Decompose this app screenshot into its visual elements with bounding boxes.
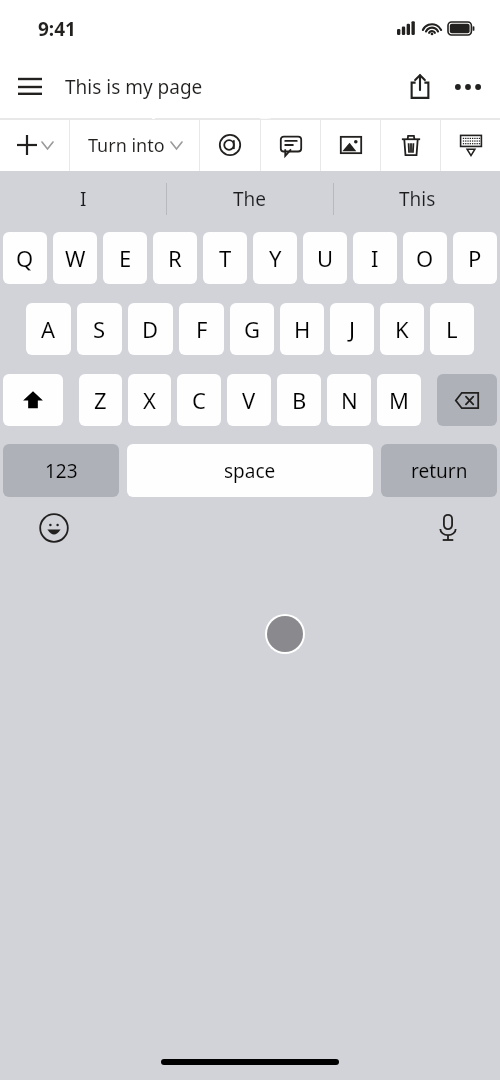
button[interactable]: Menu <box>10 67 50 107</box>
button[interactable]: space <box>127 444 373 497</box>
button[interactable]: Delete <box>381 119 440 171</box>
button[interactable]: Q <box>3 232 47 284</box>
button[interactable]: G <box>230 303 274 355</box>
staticText: Z <box>94 385 107 415</box>
staticText: P <box>468 243 482 273</box>
staticText: I <box>80 186 87 212</box>
staticText: C <box>192 385 206 415</box>
staticText: G <box>244 314 261 344</box>
button[interactable]: Insert <box>0 119 69 171</box>
button[interactable]: Mention <box>200 119 260 171</box>
staticText: Q <box>16 243 34 273</box>
staticText: 123 <box>45 458 78 484</box>
staticText: Turn into <box>88 133 165 158</box>
staticText: O <box>416 243 434 273</box>
staticText: L <box>446 314 458 344</box>
staticText: This is my page <box>65 74 203 100</box>
button[interactable]: More options <box>444 63 492 111</box>
staticText: H <box>294 314 311 344</box>
button[interactable]: J <box>330 303 374 355</box>
button[interactable]: Emoji <box>34 508 74 548</box>
staticText: S <box>93 314 106 344</box>
button[interactable]: Hide keyboard <box>441 119 500 171</box>
staticText: T <box>219 243 232 273</box>
button[interactable]: D <box>128 303 173 355</box>
button[interactable]: Shift <box>3 374 63 426</box>
staticText: I <box>371 243 379 273</box>
button[interactable]: 123 <box>3 444 119 497</box>
button[interactable]: P <box>453 232 497 284</box>
staticText: R <box>168 243 182 273</box>
button[interactable]: U <box>303 232 347 284</box>
staticText: This <box>399 186 436 212</box>
button[interactable]: H <box>280 303 324 355</box>
button[interactable]: Image <box>321 119 380 171</box>
staticText: The <box>233 186 267 212</box>
button[interactable]: I <box>353 232 397 284</box>
staticText: E <box>119 243 132 273</box>
button[interactable]: I <box>0 171 166 226</box>
staticText: A <box>41 314 56 344</box>
button[interactable]: Share <box>396 63 444 111</box>
staticText: M <box>389 385 409 415</box>
button[interactable]: Z <box>79 374 122 426</box>
button[interactable]: L <box>430 303 474 355</box>
staticText: N <box>341 385 358 415</box>
staticText: space <box>224 458 276 484</box>
button[interactable]: C <box>177 374 221 426</box>
button[interactable]: W <box>53 232 97 284</box>
button[interactable]: return <box>381 444 497 497</box>
button[interactable]: X <box>128 374 171 426</box>
button[interactable]: Voice input <box>428 508 468 548</box>
staticText: B <box>292 385 307 415</box>
staticText: 9:41 <box>38 16 76 42</box>
button[interactable]: The <box>167 171 333 226</box>
button[interactable]: Backspace <box>437 374 497 426</box>
staticText: U <box>317 243 334 273</box>
staticText: X <box>143 385 156 415</box>
button[interactable]: E <box>103 232 147 284</box>
staticText: K <box>395 314 409 344</box>
staticText: return <box>411 458 468 484</box>
button[interactable]: R <box>153 232 197 284</box>
staticText: W <box>65 243 86 273</box>
button[interactable]: N <box>327 374 371 426</box>
button[interactable]: V <box>227 374 271 426</box>
button[interactable]: F <box>179 303 224 355</box>
button[interactable]: M <box>377 374 421 426</box>
button[interactable]: B <box>277 374 321 426</box>
staticText: D <box>142 314 159 344</box>
button[interactable]: T <box>203 232 247 284</box>
button[interactable]: Comment <box>261 119 320 171</box>
button[interactable]: O <box>403 232 447 284</box>
staticText: F <box>196 314 208 344</box>
staticText: V <box>242 385 256 415</box>
button[interactable]: K <box>380 303 424 355</box>
button[interactable]: S <box>77 303 122 355</box>
staticText: J <box>349 314 356 344</box>
button[interactable]: Y <box>253 232 297 284</box>
button[interactable]: Turn into <box>70 119 199 171</box>
staticText: Y <box>269 243 282 273</box>
button[interactable]: This <box>334 171 500 226</box>
button[interactable]: A <box>26 303 71 355</box>
